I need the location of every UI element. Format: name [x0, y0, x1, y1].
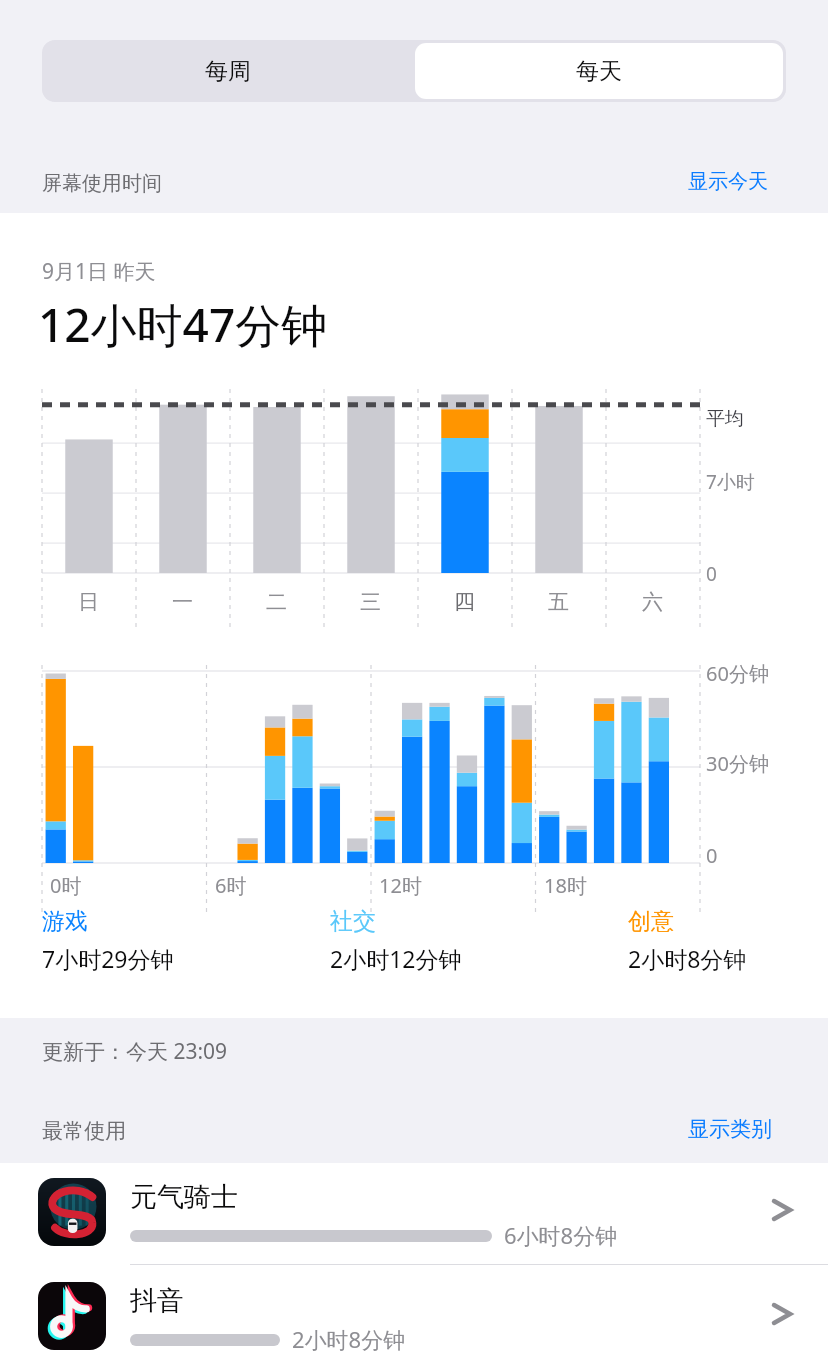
staticText: 五 [548, 589, 569, 615]
staticText: 6时 [215, 872, 247, 899]
staticText: 12时 [379, 872, 422, 899]
staticText: 元气骑士 [130, 1180, 238, 1214]
button[interactable]: 抖音 [0, 1267, 828, 1366]
staticText: 0时 [50, 872, 82, 899]
staticText: 一 [172, 589, 193, 615]
staticText: 六 [642, 589, 663, 615]
staticText: 二 [266, 589, 287, 615]
staticText: 7小时 [706, 469, 755, 495]
staticText: 2小时8分钟 [628, 943, 747, 974]
other: 查看详情 [772, 1303, 794, 1325]
staticText: 18时 [544, 872, 587, 899]
button[interactable]: 游戏 [42, 907, 174, 974]
staticText: 屏幕使用时间 [42, 171, 162, 196]
button[interactable]: 每周 [42, 40, 414, 102]
button[interactable]: 每天 [415, 43, 783, 99]
staticText: 30分钟 [706, 750, 769, 777]
staticText: 抖音 [130, 1284, 184, 1318]
staticText: 6小时8分钟 [504, 1220, 618, 1250]
staticText: 三 [360, 589, 381, 615]
staticText: 0 [706, 561, 717, 587]
staticText: 每天 [576, 57, 622, 86]
staticText: 社交 [330, 907, 376, 936]
staticText: 2小时12分钟 [330, 943, 462, 974]
button[interactable]: 显示今天 [688, 169, 768, 194]
staticText: 12小时47分钟 [38, 293, 328, 356]
button[interactable]: 社交 [330, 907, 462, 974]
staticText: 60分钟 [706, 660, 769, 687]
staticText: 最常使用 [42, 1118, 126, 1144]
staticText: 游戏 [42, 907, 88, 936]
staticText: 平均 [706, 407, 744, 431]
other: 查看详情 [772, 1199, 794, 1221]
staticText: 显示类别 [688, 1116, 772, 1142]
staticText: 日 [78, 589, 99, 615]
staticText: 0 [706, 842, 718, 869]
staticText: 每周 [205, 57, 251, 86]
staticText: 显示今天 [688, 169, 768, 194]
button[interactable]: 显示类别 [688, 1116, 772, 1142]
staticText: 9月1日 昨天 [42, 257, 156, 286]
staticText: 更新于：今天 23:09 [42, 1037, 228, 1066]
staticText: 2小时8分钟 [292, 1324, 406, 1354]
button[interactable]: 元气骑士 [0, 1163, 828, 1263]
button[interactable]: 创意 [628, 907, 747, 974]
staticText: 7小时29分钟 [42, 943, 174, 974]
staticText: 四 [454, 589, 475, 615]
staticText: 创意 [628, 907, 674, 936]
